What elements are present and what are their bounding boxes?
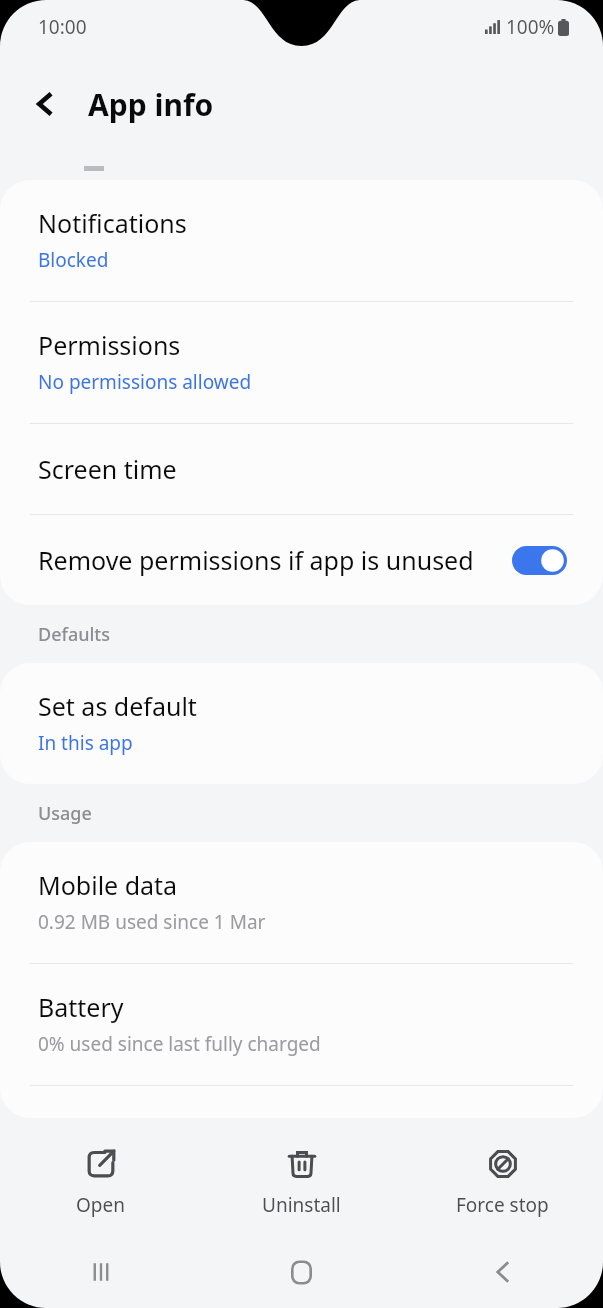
staticText: No permissions allowed (38, 369, 252, 395)
staticText: App info (88, 84, 214, 125)
staticText: In this app (38, 730, 133, 756)
staticText: Battery (38, 990, 124, 1024)
staticText: Defaults (38, 622, 110, 647)
button[interactable]: Recents (0, 1236, 201, 1308)
button[interactable]: Back (402, 1236, 603, 1308)
button[interactable]: Home (201, 1236, 402, 1308)
button[interactable]: Force stop (402, 1132, 603, 1236)
button[interactable]: Permissions (0, 302, 603, 423)
staticText: Uninstall (262, 1192, 341, 1218)
staticText: 100% (506, 14, 555, 40)
button[interactable]: Notifications (0, 180, 603, 301)
staticText: 10:00 (38, 14, 87, 40)
staticText: Remove permissions if app is unused (38, 543, 512, 577)
staticText: 0% used since last fully charged (38, 1031, 321, 1057)
staticText: Set as default (38, 689, 197, 723)
staticText: Notifications (38, 206, 187, 240)
staticText: Permissions (38, 328, 181, 362)
button[interactable]: Set as default (0, 663, 603, 784)
button[interactable]: Remove permissions if app is unused (0, 515, 603, 605)
staticText: Open (76, 1192, 125, 1218)
staticText: Usage (38, 801, 92, 826)
staticText: Blocked (38, 247, 109, 273)
button[interactable]: Screen time (0, 424, 603, 514)
staticText: Mobile data (38, 868, 178, 902)
button[interactable]: Battery (0, 964, 603, 1085)
button[interactable]: Mobile data (0, 842, 603, 963)
button[interactable]: Back (22, 81, 68, 127)
staticText: 0.92 MB used since 1 Mar (38, 909, 266, 935)
button[interactable]: Uninstall (201, 1132, 402, 1236)
staticText: Force stop (456, 1192, 549, 1218)
button[interactable]: Open (0, 1132, 201, 1236)
staticText: Screen time (38, 452, 177, 486)
